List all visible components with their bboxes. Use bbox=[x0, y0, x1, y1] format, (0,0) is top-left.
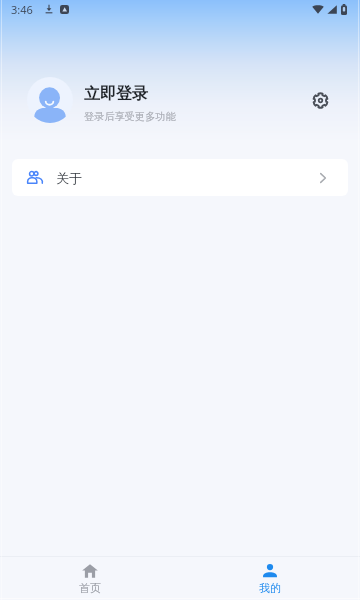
button[interactable]: 关于 bbox=[12, 159, 348, 196]
button[interactable]: 我的 bbox=[180, 557, 360, 600]
staticText: 首页 bbox=[79, 581, 101, 595]
staticText: 立即登录 bbox=[84, 84, 148, 104]
staticText: 我的 bbox=[259, 581, 281, 595]
staticText: 3:46 bbox=[11, 2, 33, 17]
staticText: 登录后享受更多功能 bbox=[84, 110, 176, 123]
button[interactable]: Profile avatar bbox=[27, 77, 73, 123]
button[interactable]: 首页 bbox=[0, 557, 180, 600]
button[interactable]: Settings bbox=[305, 85, 335, 115]
staticText: 关于 bbox=[56, 170, 82, 186]
